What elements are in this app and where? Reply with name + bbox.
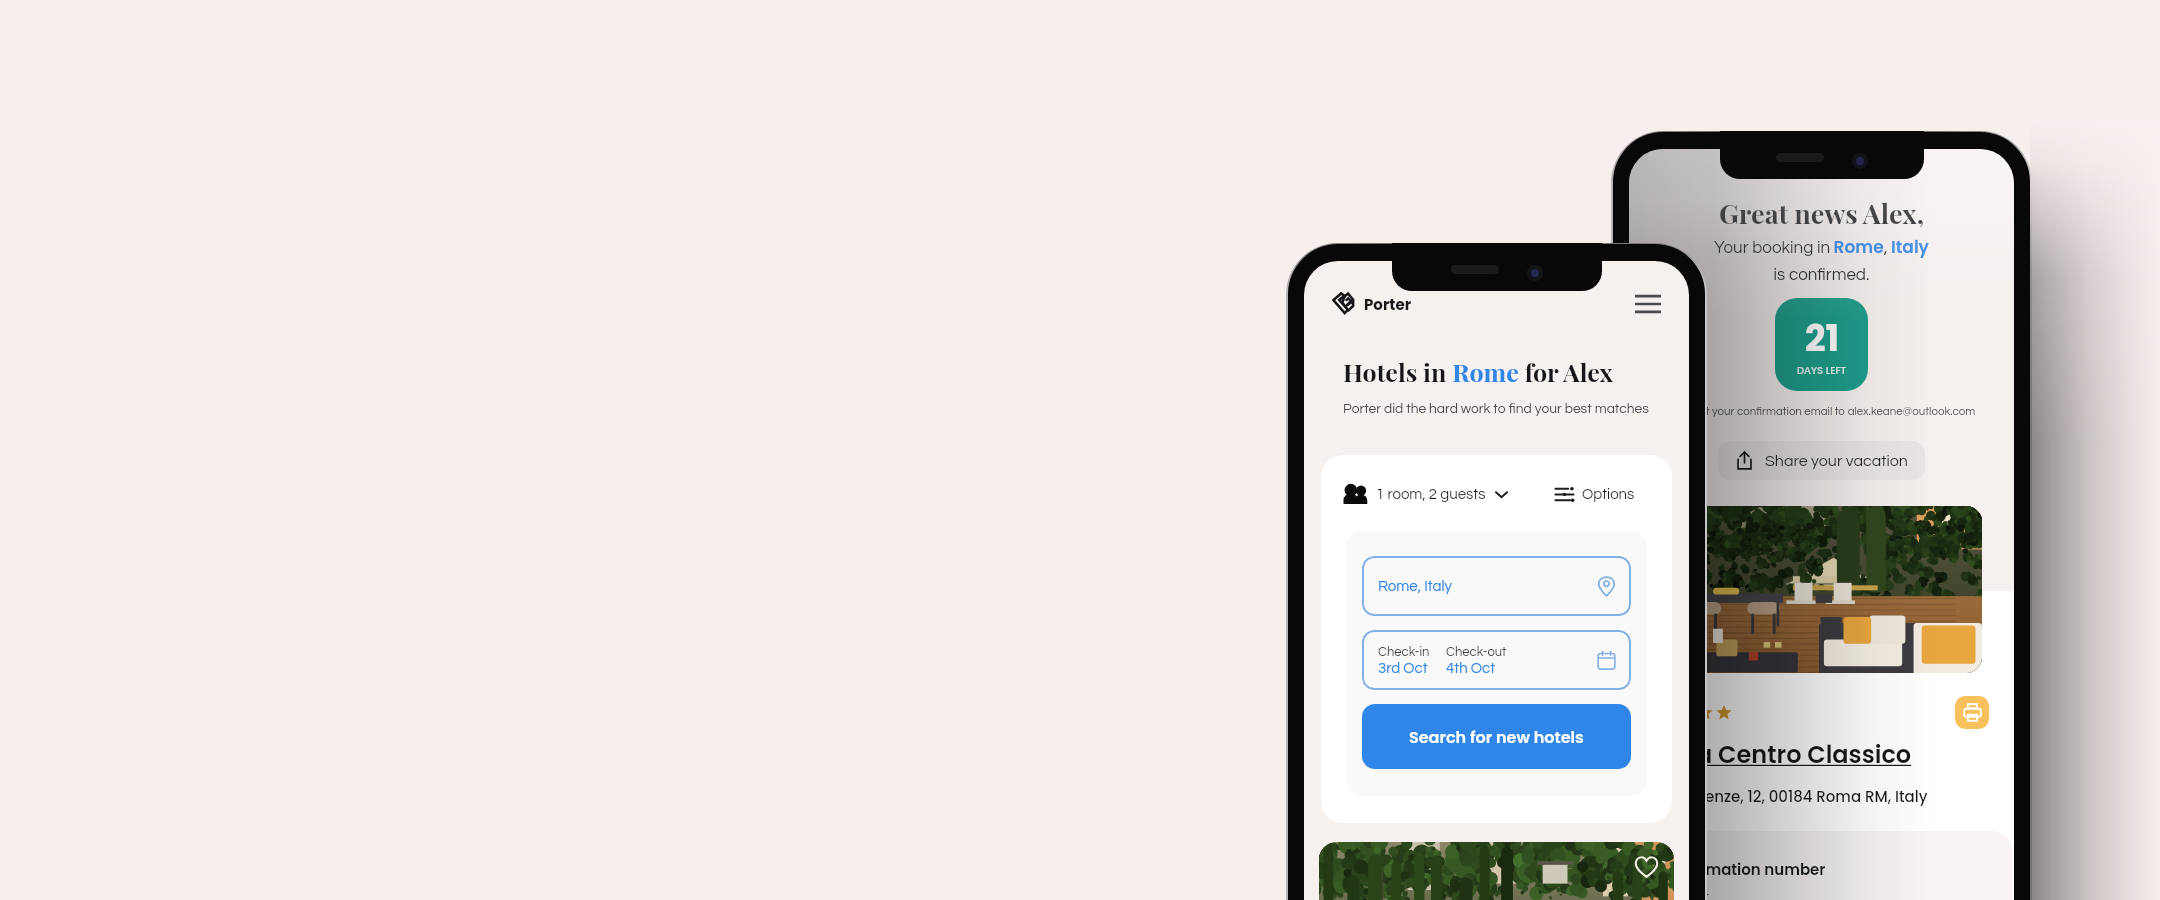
staticText: 1 room, 2 guests [1376,487,1486,502]
staticText: Porter [1364,294,1412,315]
staticText: Porter did the hard work to find your be… [1343,402,1649,416]
staticText: Great news Alex, [1719,195,1924,231]
staticText: 21 [1805,313,1840,363]
button[interactable]: Favourite [1319,842,1674,900]
staticText: Confirmation number [1659,859,1826,880]
staticText: We sent your confirmation email to alex.… [1668,406,1976,418]
button[interactable]: Share your vacation [1718,441,1925,480]
staticText: 4th Oct [1446,661,1496,676]
staticText: Rome, Italy [1378,579,1452,594]
staticText: Share your vacation [1765,453,1908,469]
button[interactable]: Print [1955,696,1989,729]
staticText: #12344 [1659,886,1709,900]
button[interactable]: Options [1555,485,1635,504]
button[interactable]: Check-in [1362,630,1631,690]
button[interactable]: Menu [1633,289,1663,319]
staticText: Via Firenze, 12, 00184 Roma RM, Italy [1659,786,1928,807]
staticText: Options [1582,487,1635,502]
staticText: Check-out [1446,645,1507,658]
staticText: Search for new hotels [1409,726,1584,748]
button[interactable]: Favourite [1634,855,1659,880]
button[interactable]: 1 room, 2 guests [1343,485,1509,504]
staticText: DAYS LEFT [1797,363,1847,377]
staticText: 3rd Oct [1378,661,1428,676]
button[interactable]: Rome, Italy [1362,556,1631,616]
staticText: Check-in [1378,645,1430,658]
staticText: Villa Centro Classico [1659,738,1912,772]
staticText: Hotels in Rome for Alex [1343,355,1613,388]
button[interactable]: Search for new hotels [1362,704,1631,769]
button[interactable]: Porter [1332,292,1412,316]
staticText: Your booking in Rome, Italy is confirmed… [1714,235,1929,283]
